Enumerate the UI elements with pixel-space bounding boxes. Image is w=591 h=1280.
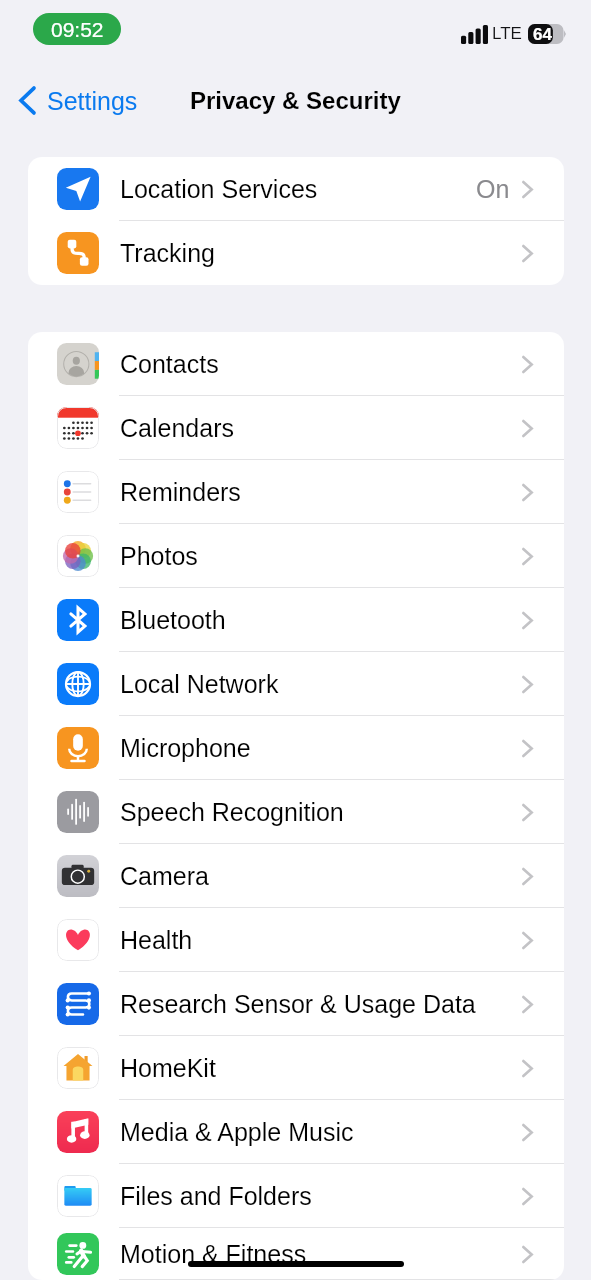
button[interactable]: Photos [28, 524, 564, 588]
staticText: Local Network [120, 670, 279, 698]
button[interactable]: Motion & Fitness [28, 1228, 564, 1280]
button[interactable]: Tracking [28, 221, 564, 285]
staticText: Health [120, 926, 193, 954]
button[interactable]: Bluetooth [28, 588, 564, 652]
button[interactable]: Microphone [28, 716, 564, 780]
button[interactable]: Local Network [28, 652, 564, 716]
button[interactable]: HomeKit [28, 1036, 564, 1100]
staticText: Files and Folders [120, 1182, 312, 1210]
button[interactable]: Contacts [28, 332, 564, 396]
staticText: Privacy & Security [190, 87, 401, 114]
staticText: LTE [492, 24, 522, 43]
button[interactable]: Media & Apple Music [28, 1100, 564, 1164]
staticText: HomeKit [120, 1054, 216, 1082]
staticText: Camera [120, 862, 209, 890]
staticText: Calendars [120, 414, 234, 442]
staticText: Media & Apple Music [120, 1118, 354, 1146]
staticText: Photos [120, 542, 198, 570]
button[interactable]: Reminders [28, 460, 564, 524]
staticText: Location Services [120, 175, 318, 203]
button[interactable]: Calendars [28, 396, 564, 460]
staticText: Tracking [120, 239, 215, 267]
button[interactable]: Files and Folders [28, 1164, 564, 1228]
staticText: Speech Recognition [120, 798, 344, 826]
staticText: Microphone [120, 734, 251, 762]
staticText: On [476, 175, 510, 203]
button[interactable]: Back to Settings [0, 80, 148, 121]
staticText: Bluetooth [120, 606, 226, 634]
staticText: 64 [533, 25, 552, 44]
button[interactable]: Camera [28, 844, 564, 908]
button[interactable]: Research Sensor & Usage Data [28, 972, 564, 1036]
button[interactable]: Health [28, 908, 564, 972]
staticText: Motion & Fitness [120, 1240, 307, 1268]
staticText: Settings [47, 87, 138, 115]
staticText: Research Sensor & Usage Data [120, 990, 476, 1018]
staticText: Contacts [120, 350, 219, 378]
button[interactable]: Location Services [28, 157, 564, 221]
button[interactable]: Speech Recognition [28, 780, 564, 844]
staticText: Reminders [120, 478, 241, 506]
staticText: 09:52 [51, 18, 104, 41]
